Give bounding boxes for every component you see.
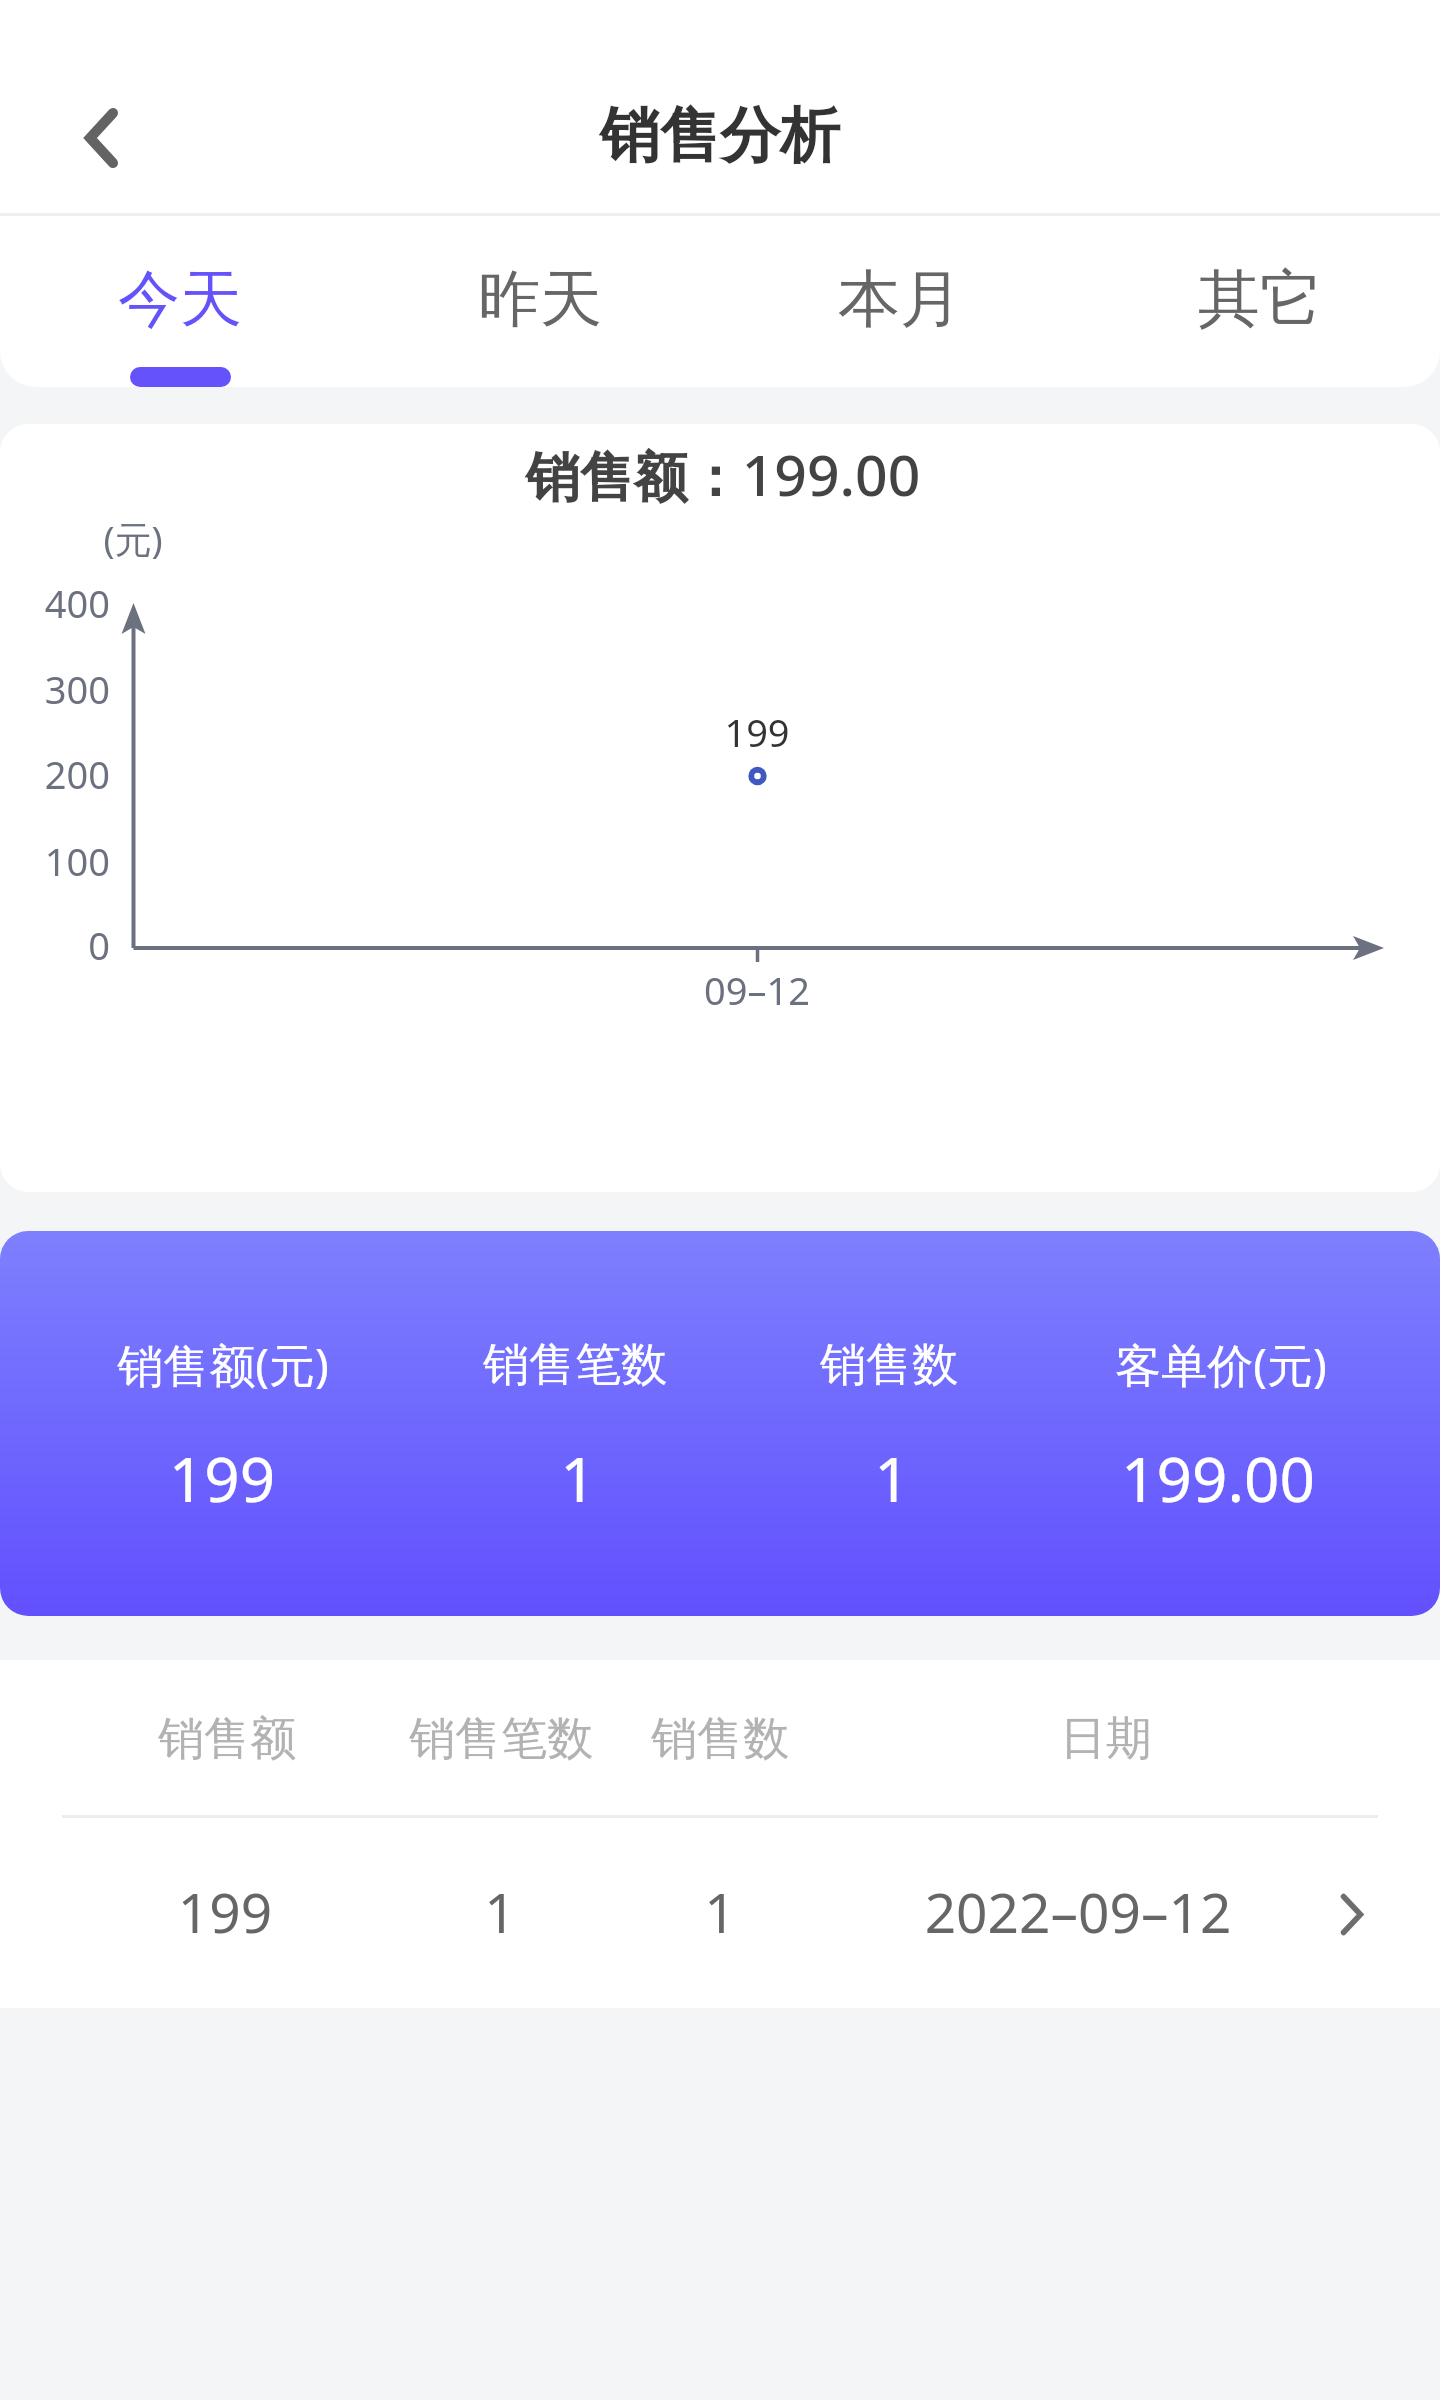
staticText: 销售笔数 <box>365 1336 785 1394</box>
staticText: 199.00 <box>1008 1436 1428 1520</box>
button[interactable]: 其它 <box>1080 216 1440 387</box>
staticText: 200 <box>10 748 110 800</box>
staticText: 2022–09–12 <box>828 1874 1328 1949</box>
staticText: 100 <box>10 835 110 887</box>
staticText: 销售数 <box>679 1336 1099 1394</box>
staticText: 本月 <box>720 260 1080 338</box>
button[interactable]: Back <box>41 78 161 198</box>
button[interactable]: 本月 <box>720 216 1080 387</box>
staticText: 0 <box>10 919 110 971</box>
staticText: 其它 <box>1080 260 1440 338</box>
staticText: 400 <box>10 577 110 629</box>
button[interactable]: 今天 <box>0 216 360 387</box>
staticText: 销售额 <box>27 1710 427 1768</box>
staticText: 销售笔数 <box>301 1710 701 1768</box>
staticText: 199 <box>25 1874 425 1949</box>
staticText: 销售额(元) <box>13 1333 433 1396</box>
button[interactable]: 199 <box>0 1816 1440 2008</box>
staticText: 199 <box>607 706 907 758</box>
staticText: 昨天 <box>360 260 720 338</box>
staticText: 1 <box>682 1436 1102 1520</box>
staticText: 今天 <box>0 260 360 338</box>
staticText: 199 <box>12 1436 432 1520</box>
staticText: 300 <box>10 663 110 715</box>
staticText: 销售额：199.00 <box>273 435 1173 513</box>
button[interactable]: 昨天 <box>360 216 720 387</box>
staticText: 客单价(元) <box>1011 1333 1431 1396</box>
staticText: 1 <box>520 1874 920 1949</box>
staticText: 1 <box>300 1874 700 1949</box>
staticText: 销售分析 <box>320 98 1120 174</box>
staticText: 销售数 <box>520 1710 920 1768</box>
staticText: (元) <box>103 513 163 564</box>
staticText: 09–12 <box>607 964 907 1016</box>
staticText: 日期 <box>906 1710 1306 1768</box>
staticText: 1 <box>368 1436 788 1520</box>
